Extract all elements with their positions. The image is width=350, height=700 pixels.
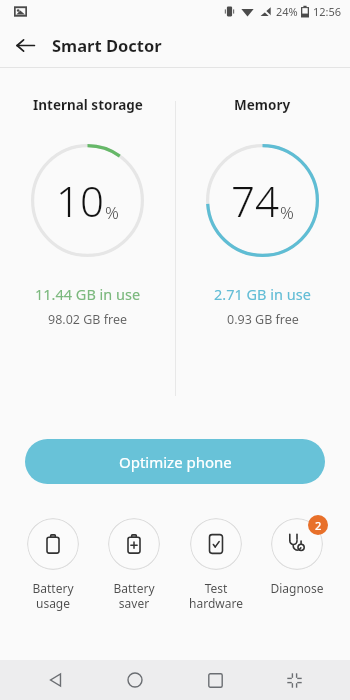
- button[interactable]: Back: [32, 660, 80, 700]
- button[interactable]: Hide navigation bar: [270, 660, 318, 700]
- button[interactable]: Recent apps: [191, 660, 239, 700]
- button[interactable]: Diagnose: [258, 513, 336, 596]
- button[interactable]: Back: [8, 28, 42, 62]
- staticText: 10: [56, 172, 104, 229]
- staticText: Battery saver: [113, 580, 155, 611]
- button[interactable]: Optimize phone: [25, 439, 325, 484]
- staticText: Memory: [234, 96, 291, 114]
- staticText: Optimize phone: [119, 452, 232, 472]
- button[interactable]: Test hardware: [177, 513, 255, 611]
- staticText: Diagnose: [270, 580, 324, 596]
- staticText: 2.71 GB in use: [214, 284, 311, 304]
- staticText: 98.02 GB free: [48, 311, 127, 328]
- staticText: 12:56: [313, 4, 342, 19]
- staticText: 24%: [276, 4, 298, 19]
- staticText: 74: [231, 172, 279, 229]
- staticText: 11.44 GB in use: [35, 284, 141, 304]
- staticText: %: [105, 201, 119, 224]
- staticText: 0.93 GB free: [227, 311, 299, 328]
- button[interactable]: Battery usage: [14, 513, 92, 611]
- staticText: Internal storage: [33, 96, 143, 114]
- staticText: Battery usage: [32, 580, 74, 611]
- staticText: Smart Doctor: [52, 34, 162, 56]
- staticText: 2: [315, 518, 322, 533]
- button[interactable]: Battery saver: [95, 513, 173, 611]
- button[interactable]: Home: [111, 660, 159, 700]
- staticText: Test hardware: [189, 580, 243, 611]
- staticText: %: [280, 201, 294, 224]
